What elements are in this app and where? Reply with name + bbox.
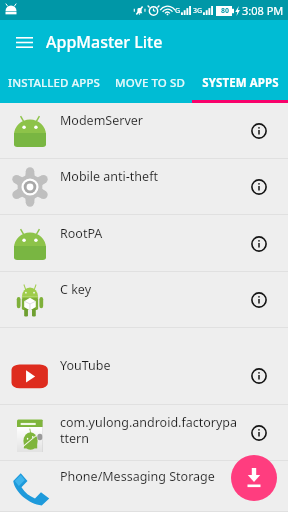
button[interactable]: App info (239, 159, 279, 215)
button[interactable]: Phone/Messaging Storage (0, 461, 288, 512)
button[interactable]: Mobile anti-theft (0, 159, 288, 215)
button[interactable]: App info (239, 215, 279, 272)
button[interactable]: Download (231, 455, 277, 501)
staticText: ModemServer (60, 112, 143, 129)
staticText: AppMaster Lite (46, 31, 163, 53)
staticText: MOVE TO SD (115, 75, 185, 91)
button[interactable]: SYSTEM APPS (192, 65, 288, 101)
button[interactable]: App info (239, 405, 279, 461)
staticText: Mobile anti-theft (60, 168, 158, 185)
staticText: G (175, 6, 181, 16)
staticText: com.yulong.android.factorypa ttern (60, 414, 238, 444)
button[interactable]: C key (0, 272, 288, 328)
staticText: RootPA (60, 225, 103, 242)
staticText: C key (60, 281, 92, 298)
button[interactable]: YouTube (0, 328, 288, 405)
button[interactable]: com.yulong.android.factorypa ttern (0, 405, 288, 461)
staticText: SYSTEM APPS (202, 75, 279, 91)
button[interactable]: App info (239, 461, 279, 512)
button[interactable]: Open navigation drawer (0, 20, 48, 65)
button[interactable]: INSTALLED APPS (0, 65, 107, 101)
staticText: YouTube (60, 357, 111, 374)
staticText: 3G (193, 6, 203, 16)
staticText: INSTALLED APPS (8, 75, 100, 91)
staticText: Phone/Messaging Storage (60, 468, 215, 485)
button[interactable]: MOVE TO SD (107, 65, 192, 101)
button[interactable]: ModemServer (0, 103, 288, 159)
button[interactable]: App info (239, 103, 279, 159)
button[interactable]: App info (239, 272, 279, 328)
button[interactable]: App info (239, 337, 279, 414)
staticText: 80 (221, 6, 230, 16)
staticText: 3:08 PM (242, 3, 284, 18)
button[interactable]: RootPA (0, 215, 288, 272)
